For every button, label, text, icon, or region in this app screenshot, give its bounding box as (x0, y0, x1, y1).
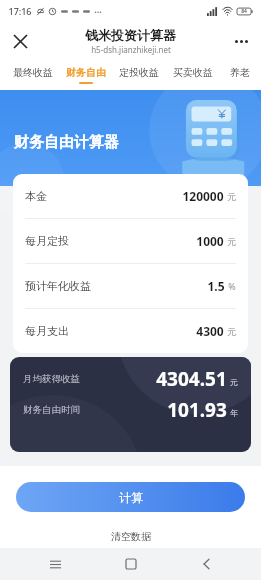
staticText: 最终收益 (13, 66, 53, 79)
staticText: 84 (241, 8, 247, 15)
staticText: ··· (94, 5, 102, 17)
staticText: 财务自由 (66, 66, 106, 79)
staticText: h5-dsh.jianzhikeji.net (91, 44, 171, 55)
staticText: 养老 (230, 66, 250, 79)
staticText: 120000 (182, 188, 224, 204)
button[interactable]: 预计年化收益 (25, 264, 236, 309)
button[interactable]: More options (227, 27, 255, 55)
staticText: 每月定投 (25, 234, 69, 248)
staticText: 1000 (196, 233, 224, 249)
button[interactable]: 计算 (16, 482, 245, 512)
button[interactable]: 定投收益 (112, 66, 166, 84)
staticText: 钱米投资计算器 (85, 27, 176, 43)
button[interactable]: 每月定投 (25, 219, 236, 264)
staticText: 17:16 (8, 5, 32, 17)
staticText: 元 (230, 377, 238, 387)
staticText: 元 (227, 326, 236, 337)
staticText: 元 (227, 236, 236, 247)
button[interactable]: 清空数据 (107, 526, 155, 547)
staticText: 4304.51 (156, 366, 227, 392)
staticText: 财务自由计算器 (14, 133, 119, 152)
staticText: 101.93 (167, 397, 227, 423)
staticText: 本金 (25, 189, 47, 203)
staticText: 买卖收益 (173, 66, 213, 79)
button[interactable]: 本金 (25, 174, 236, 219)
button[interactable]: 最终收益 (6, 66, 59, 84)
staticText: 年 (230, 408, 238, 418)
staticText: 每月支出 (25, 324, 69, 338)
staticText: 定投收益 (119, 66, 159, 79)
staticText: 元 (227, 191, 236, 202)
staticText: 财务自由时间 (23, 404, 80, 416)
staticText: 预计年化收益 (25, 279, 91, 293)
staticText: 4300 (196, 323, 224, 339)
button[interactable]: 养老 (220, 66, 259, 84)
staticText: 计算 (119, 490, 143, 505)
staticText: 1.5 (207, 278, 225, 294)
button[interactable]: 买卖收益 (166, 66, 220, 84)
button[interactable]: Back (186, 548, 226, 580)
button[interactable]: 每月支出 (25, 309, 236, 353)
button[interactable]: 财务自由 (59, 66, 112, 84)
staticText: % (228, 280, 236, 292)
staticText: 月均获得收益 (23, 373, 80, 385)
button[interactable]: Recents (35, 548, 75, 580)
button[interactable]: Home (111, 548, 151, 580)
button[interactable]: Close (6, 27, 34, 55)
